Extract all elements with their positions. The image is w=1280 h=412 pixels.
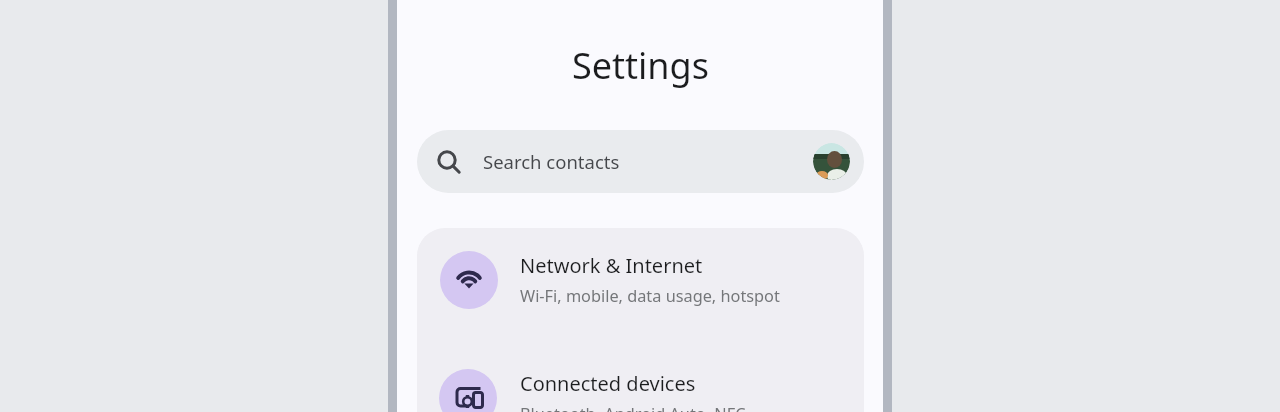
staticText: Bluetooth, Android Auto, NFC [520, 403, 746, 412]
staticText: Wi-Fi, mobile, data usage, hotspot [520, 285, 780, 307]
button[interactable]: Network & Internet [417, 228, 864, 340]
button[interactable]: Connected devices [417, 346, 864, 412]
staticText: Search contacts [483, 149, 620, 174]
staticText: Settings [572, 41, 709, 90]
staticText: Network & Internet [520, 252, 703, 278]
staticText: Connected devices [520, 370, 696, 396]
button[interactable]: Search contacts [417, 130, 864, 193]
button[interactable] [813, 143, 850, 180]
